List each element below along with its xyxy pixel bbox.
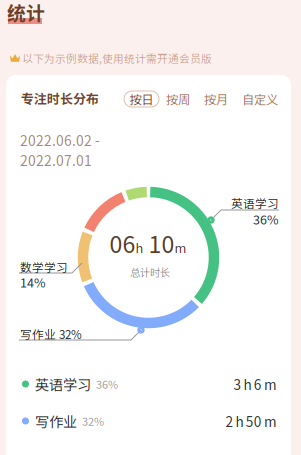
staticText: 按日 [129,90,153,108]
staticText: 50 [246,411,262,431]
button[interactable]: 自定义 [242,90,278,107]
staticText: 以下为示例数据,使用统计需开通会员版 [22,50,212,66]
staticText: 统计 [7,0,45,25]
staticText: 36% [253,210,279,228]
staticText: m [174,238,186,257]
staticText: h [244,374,252,394]
staticText: 写作业 [35,411,77,431]
staticText: 总计时长 [130,265,170,279]
staticText: 6 [254,374,262,394]
staticText: 按周 [166,90,190,108]
staticText: m [264,411,277,431]
staticText: 数学学习 [20,259,68,275]
staticText: 36% [96,376,118,392]
button[interactable]: 按周 [166,90,190,107]
button[interactable]: 按日 [124,91,159,107]
staticText: 英语学习 [35,374,91,394]
button[interactable]: 按月 [204,90,228,107]
staticText: 写作业 32% [20,326,82,342]
staticText: 2 [225,411,233,431]
button[interactable]: 英语学习 [6,366,291,402]
staticText: 自定义 [242,90,278,108]
button[interactable]: 写作业 [6,403,291,439]
staticText: 英语学习 [231,195,279,211]
staticText: 14% [20,273,46,291]
staticText: h [236,411,244,431]
staticText: 32% [82,413,104,429]
staticText: 06 [109,226,135,260]
staticText: h [135,238,143,257]
staticText: m [264,374,277,394]
staticText: 按月 [204,90,228,108]
staticText: 3 [233,374,241,394]
staticText: 2022.06.02 - 2022.07.01 [20,130,100,170]
staticText: 专注时长分布 [21,89,99,107]
staticText: 10 [148,226,174,260]
